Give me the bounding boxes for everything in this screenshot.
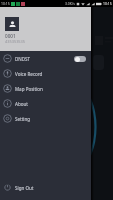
staticText: 10:15: [103, 1, 112, 6]
staticText: 10:15: [1, 1, 10, 6]
button[interactable]: Sign Out: [0, 180, 91, 195]
button[interactable]: About: [0, 96, 91, 111]
staticText: Map Position: [15, 86, 43, 92]
staticText: 435353535: [5, 39, 26, 44]
staticText: 0001: [5, 33, 16, 39]
staticText: DNDST: [15, 56, 31, 62]
button[interactable]: Voice Record: [0, 66, 91, 81]
button[interactable]: Toggle DNDST: [74, 56, 86, 62]
button[interactable]: Setting: [0, 111, 91, 126]
button[interactable]: Map Position: [0, 81, 91, 96]
staticText: 3.0K/s: [65, 1, 75, 6]
staticText: About: [15, 101, 28, 107]
staticText: Voice Record: [15, 71, 43, 77]
button[interactable]: DNDST: [0, 51, 91, 66]
staticText: Setting: [15, 116, 31, 122]
staticText: Sign Out: [15, 185, 34, 191]
